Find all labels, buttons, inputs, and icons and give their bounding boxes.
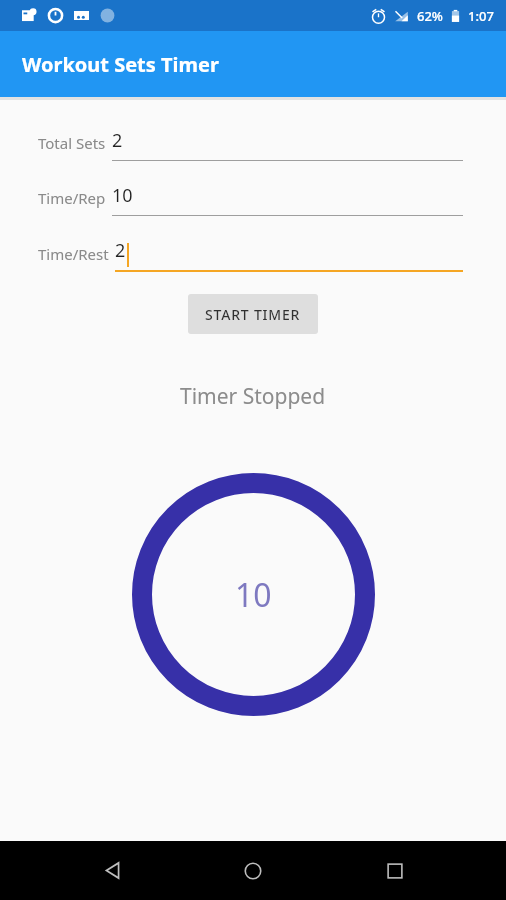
button[interactable]: START TIMER [188,294,318,334]
staticText: Total Sets [38,133,106,153]
staticText: START TIMER [205,305,301,324]
button[interactable]: Total Sets [38,128,463,161]
button[interactable]: Time/Rest [38,238,463,272]
staticText: Time/Rep [38,188,106,208]
staticText: Time/Rest [38,244,109,264]
staticText: 10 [112,183,133,208]
staticText: 62% [417,7,443,25]
button[interactable]: Home [223,841,283,900]
staticText: 2 [112,128,123,153]
button[interactable]: Back [82,841,142,900]
button[interactable]: Time/Rep [38,183,463,216]
staticText: 2 [115,238,126,263]
staticText: 10 [235,573,272,617]
staticText: 1:07 [468,7,494,25]
staticText: Workout Sets Timer [22,51,219,78]
button[interactable]: Recent apps [365,841,425,900]
staticText: Timer Stopped [180,382,326,411]
